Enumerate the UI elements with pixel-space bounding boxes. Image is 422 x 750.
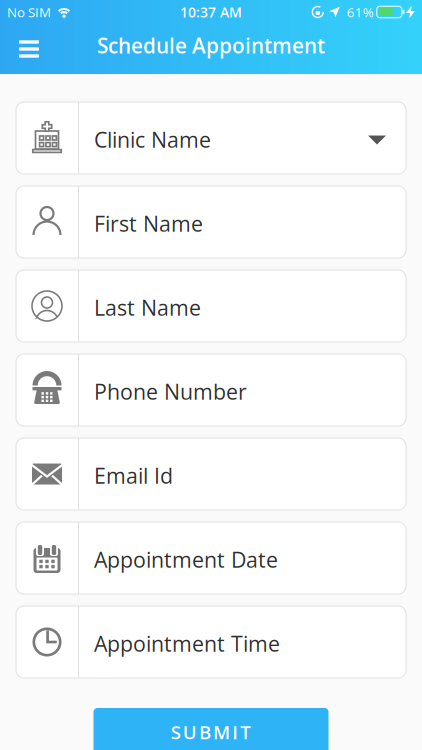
staticText: I [232,719,238,745]
staticText: 61% [347,3,374,21]
button[interactable]: S [93,708,328,750]
button[interactable]: Clinic Name [16,102,406,174]
staticText: First Name [94,209,203,238]
button[interactable]: Menu [8,27,50,71]
staticText: T [240,719,251,745]
staticText: Appointment Time [94,629,280,658]
button[interactable]: First Name [16,186,406,258]
staticText: Email Id [94,461,173,490]
button[interactable]: Appointment Time [16,606,406,678]
staticText: B [199,719,211,745]
staticText: Clinic Name [94,125,211,154]
staticText: U [183,719,197,745]
staticText: Phone Number [94,377,247,406]
staticText: Appointment Date [94,545,278,574]
staticText: No SIM [7,3,51,21]
staticText: Schedule Appointment [97,31,325,59]
button[interactable]: Appointment Date [16,522,406,594]
staticText: 10:37 AM [180,2,242,22]
staticText: S [171,719,181,745]
button[interactable]: Last Name [16,270,406,342]
button[interactable]: Email Id [16,438,406,510]
staticText: Last Name [94,293,201,322]
staticText: M [213,719,230,745]
button[interactable]: Phone Number [16,354,406,426]
